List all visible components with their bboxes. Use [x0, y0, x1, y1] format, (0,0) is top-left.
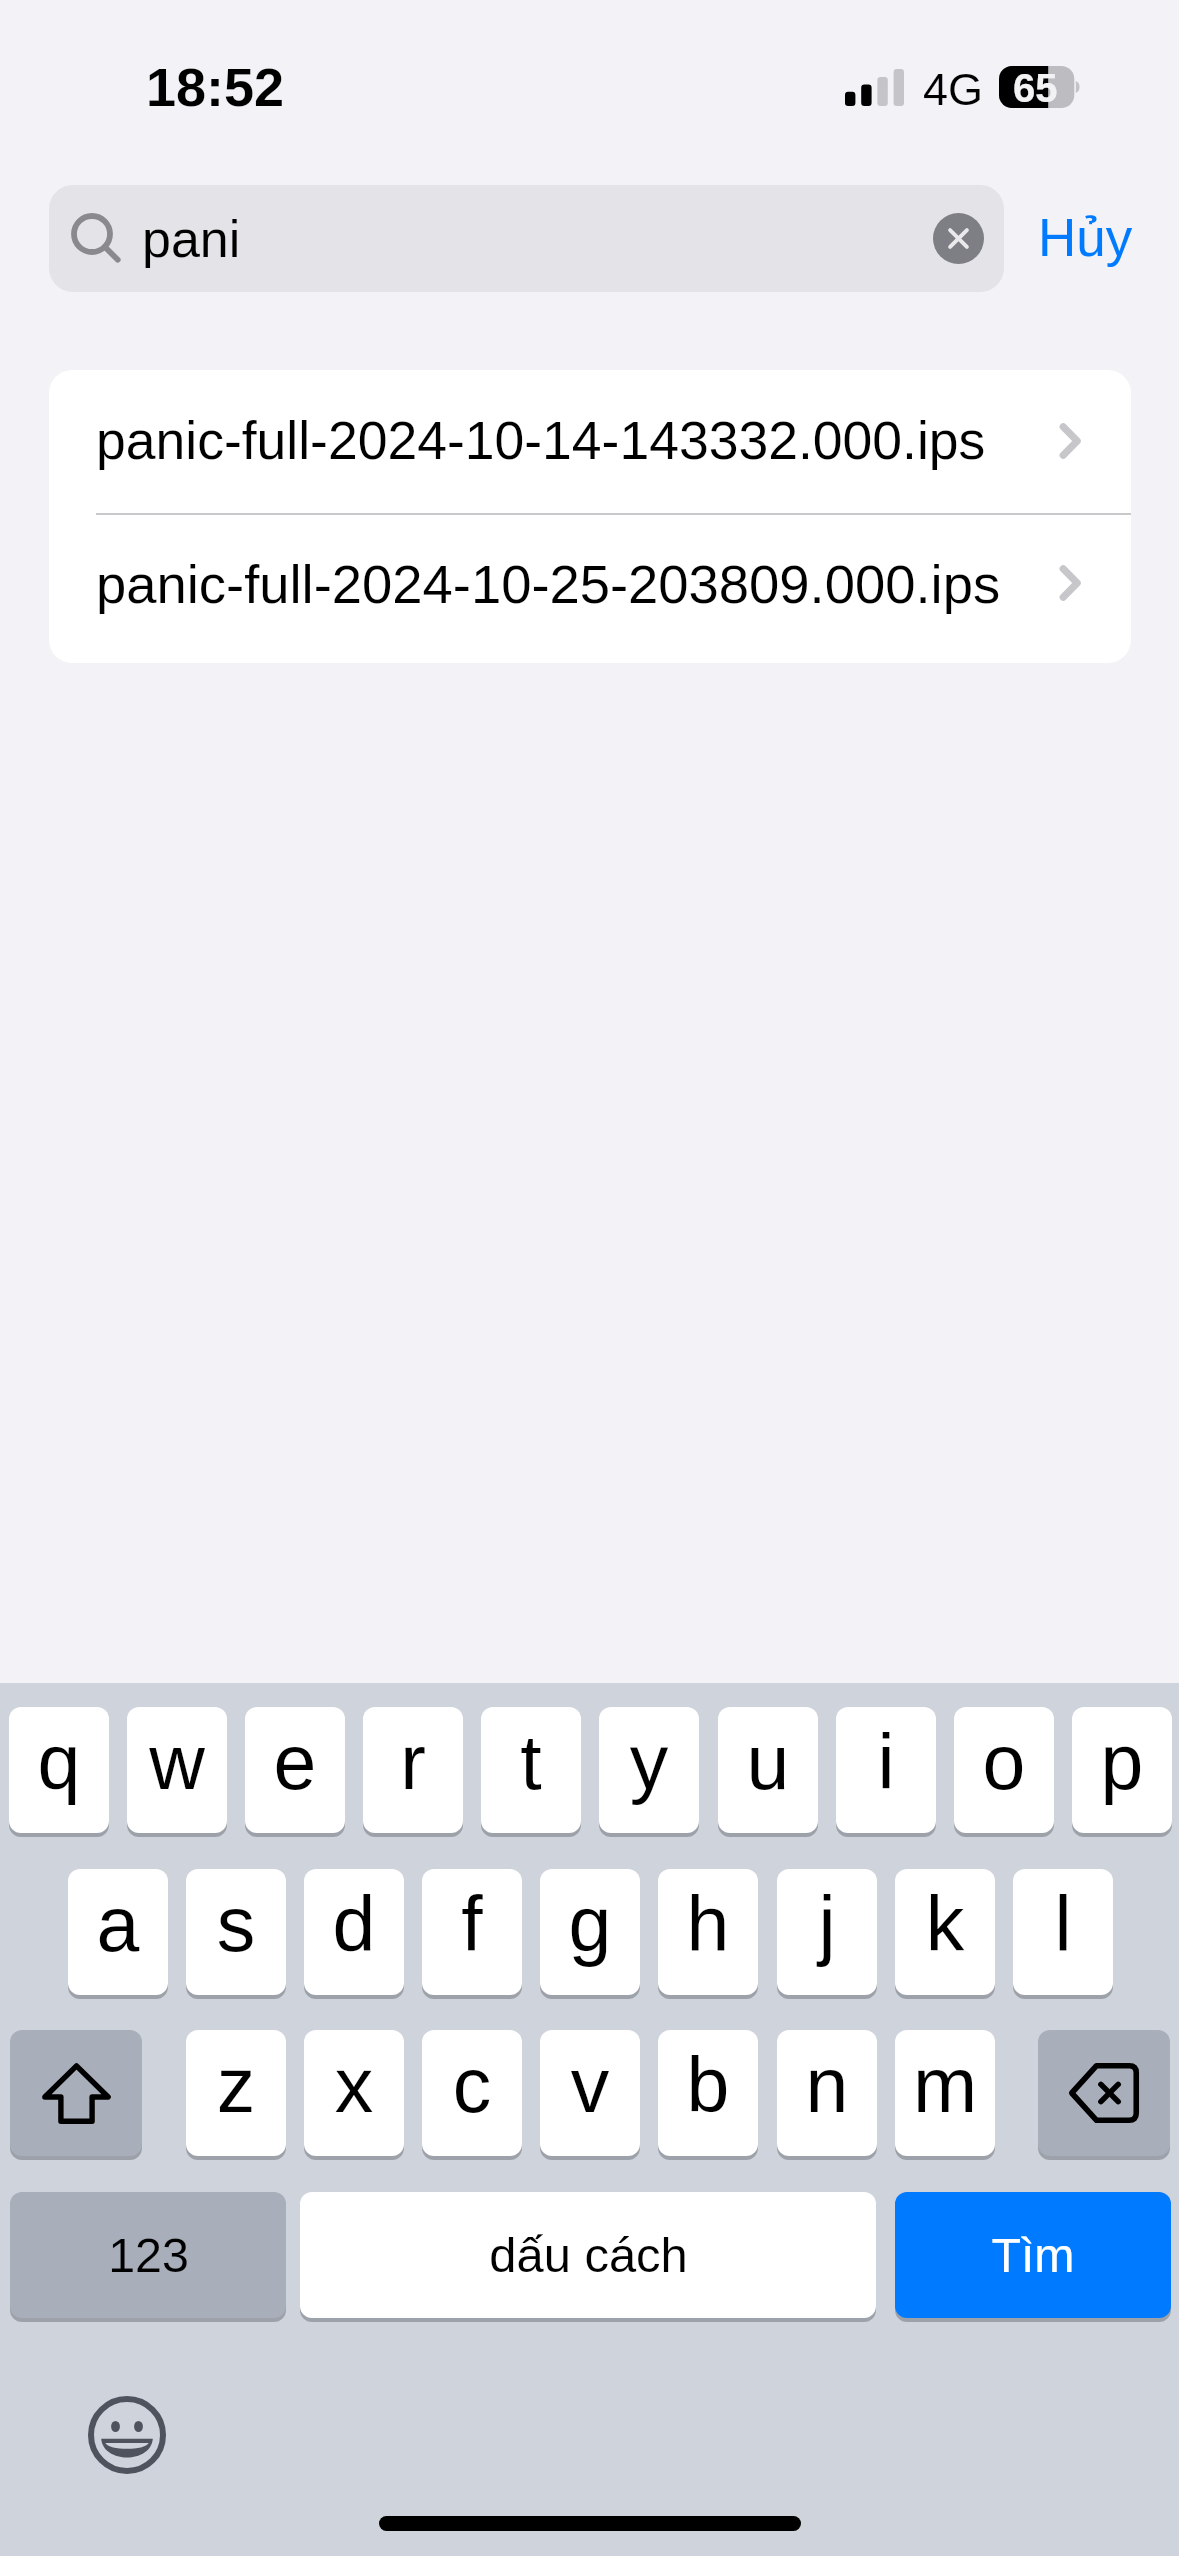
staticText: k [895, 1881, 995, 1967]
button[interactable]: o [954, 1707, 1054, 1833]
staticText: u [718, 1719, 818, 1805]
button[interactable]: x [304, 2030, 404, 2156]
staticText: a [68, 1881, 168, 1967]
button[interactable]: t [481, 1707, 581, 1833]
staticText: n [777, 2042, 877, 2128]
button[interactable]: p [1072, 1707, 1172, 1833]
button[interactable]: h [658, 1869, 758, 1995]
staticText: b [658, 2042, 758, 2128]
button[interactable]: Search field [49, 185, 1004, 292]
staticText: o [954, 1719, 1054, 1805]
button[interactable]: v [540, 2030, 640, 2156]
button[interactable]: f [422, 1869, 522, 1995]
staticText: Hủy [1038, 208, 1133, 267]
staticText: 4G [923, 64, 984, 114]
staticText: 123 [108, 2228, 189, 2282]
button[interactable] [49, 370, 1131, 513]
staticText: d [304, 1881, 404, 1967]
button[interactable]: m [895, 2030, 995, 2156]
staticText: x [304, 2042, 404, 2128]
staticText: f [422, 1881, 522, 1967]
button[interactable]: k [895, 1869, 995, 1995]
button[interactable]: dấu cách [300, 2192, 876, 2318]
button[interactable]: Tìm [895, 2192, 1171, 2318]
staticText: j [777, 1881, 877, 1967]
button[interactable]: Clear text [933, 213, 984, 264]
staticText: y [599, 1719, 699, 1805]
button[interactable]: 123 [10, 2192, 286, 2318]
staticText: s [186, 1881, 286, 1967]
button[interactable]: d [304, 1869, 404, 1995]
button[interactable]: q [9, 1707, 109, 1833]
button[interactable]: l [1013, 1869, 1113, 1995]
button[interactable]: j [777, 1869, 877, 1995]
staticText: Tìm [991, 2228, 1075, 2282]
button[interactable]: c [422, 2030, 522, 2156]
staticText: r [363, 1719, 463, 1805]
staticText: 18:52 [146, 57, 285, 117]
button[interactable]: b [658, 2030, 758, 2156]
staticText: pani [142, 210, 241, 268]
staticText: dấu cách [489, 2228, 688, 2283]
button[interactable]: Hủy [1024, 192, 1146, 287]
button[interactable]: s [186, 1869, 286, 1995]
button[interactable]: u [718, 1707, 818, 1833]
button[interactable]: n [777, 2030, 877, 2156]
staticText: v [540, 2042, 640, 2128]
staticText: 65 [1013, 66, 1058, 111]
button[interactable]: Emoji keyboard [82, 2390, 172, 2480]
button[interactable]: i [836, 1707, 936, 1833]
button[interactable]: r [363, 1707, 463, 1833]
staticText: w [127, 1719, 227, 1805]
button[interactable]: w [127, 1707, 227, 1833]
staticText: e [245, 1719, 345, 1805]
button[interactable] [49, 515, 1131, 663]
staticText: m [895, 2042, 995, 2128]
button[interactable]: z [186, 2030, 286, 2156]
staticText: c [422, 2042, 522, 2128]
button[interactable]: Shift [10, 2030, 142, 2156]
staticText: z [186, 2042, 286, 2128]
staticText: p [1072, 1719, 1172, 1805]
staticText: h [658, 1881, 758, 1967]
staticText: panic-full-2024-10-14-143332.000.ips [96, 411, 986, 471]
staticText: panic-full-2024-10-25-203809.000.ips [96, 554, 1001, 615]
staticText: i [836, 1719, 936, 1805]
staticText: l [1013, 1881, 1113, 1967]
button[interactable]: e [245, 1707, 345, 1833]
button[interactable]: a [68, 1869, 168, 1995]
staticText: q [9, 1719, 109, 1805]
button[interactable]: y [599, 1707, 699, 1833]
button[interactable]: g [540, 1869, 640, 1995]
staticText: g [540, 1881, 640, 1967]
staticText: t [481, 1719, 581, 1805]
button[interactable]: Backspace [1038, 2030, 1170, 2156]
